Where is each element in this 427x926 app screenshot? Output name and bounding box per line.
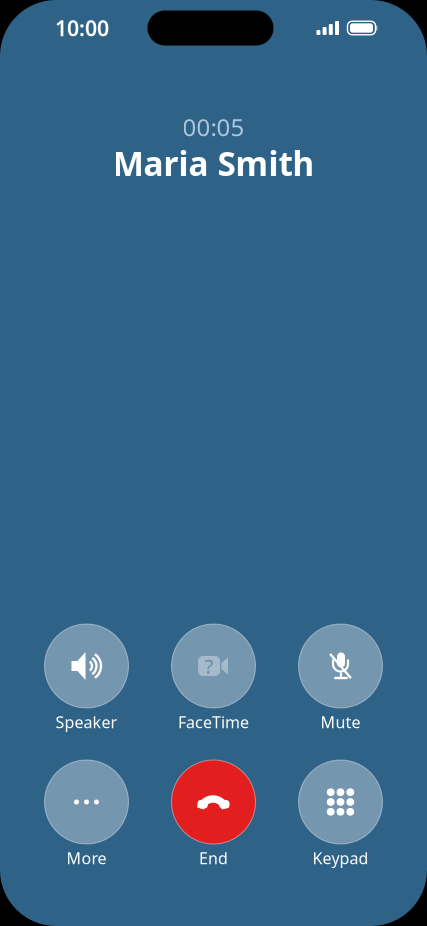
staticText: FaceTime (178, 711, 249, 733)
staticText: Mute (320, 711, 360, 733)
button[interactable]: Speaker (28, 624, 144, 732)
staticText: Speaker (55, 711, 117, 733)
staticText: Keypad (312, 847, 368, 869)
staticText: End (199, 847, 228, 869)
button[interactable]: Mute (282, 624, 398, 732)
staticText: More (66, 847, 106, 869)
button[interactable]: Keypad (282, 760, 398, 868)
staticText: Maria Smith (112, 141, 314, 185)
staticText: 10:00 (55, 14, 109, 42)
staticText: ? (204, 653, 213, 679)
button[interactable]: End (155, 760, 271, 868)
staticText: 00:05 (182, 111, 244, 143)
button[interactable]: ? (155, 624, 271, 732)
button[interactable]: More (28, 760, 144, 868)
